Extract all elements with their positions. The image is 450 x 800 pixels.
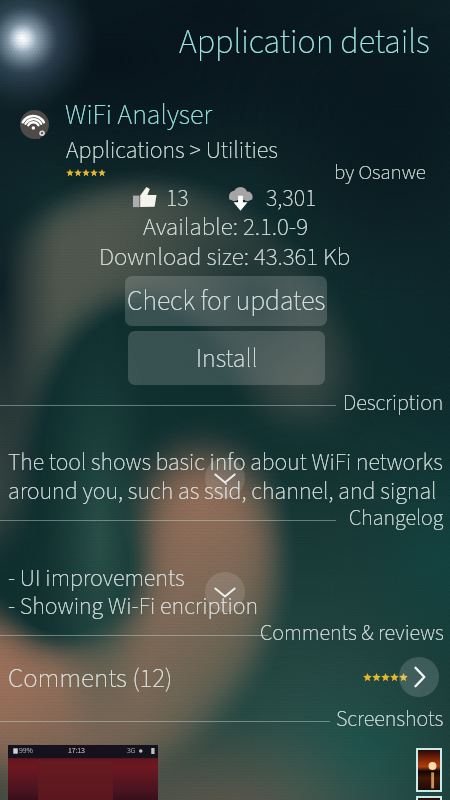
staticText: Application details <box>179 18 430 66</box>
staticText: The tool shows basic info about WiFi net… <box>8 446 443 480</box>
staticText: 13 <box>166 181 189 215</box>
staticText: Changelog <box>349 502 444 533</box>
staticText: 3,301 <box>266 181 317 215</box>
staticText: Check for updates <box>127 282 326 321</box>
staticText: around you, such as ssid, channel, and s… <box>8 474 437 508</box>
button[interactable]: Check for updates <box>125 276 327 326</box>
button[interactable]: Open comments <box>399 657 439 697</box>
staticText: by Osanwe <box>334 157 426 187</box>
staticText: Description <box>343 387 444 418</box>
staticText: 17:13 <box>68 745 85 756</box>
staticText: Comments (12) <box>8 659 173 697</box>
button[interactable]: Screenshot <box>8 745 158 800</box>
button[interactable]: Screenshot thumbnail <box>418 750 440 790</box>
staticText: WiFi Analyser <box>65 95 212 135</box>
staticText: Applications > Utilities <box>66 133 278 167</box>
button[interactable]: Screenshot thumbnail <box>418 798 440 800</box>
staticText: Download size: 43.361 Kb <box>99 239 351 275</box>
staticText: Comments & reviews <box>260 617 444 648</box>
staticText: Install <box>196 340 258 377</box>
button[interactable]: Expand <box>205 572 245 612</box>
staticText: 99% <box>19 745 33 756</box>
staticText: Available: 2.1.0-9 <box>143 209 308 245</box>
button[interactable]: Install <box>128 331 325 385</box>
staticText: 3G <box>127 745 136 756</box>
staticText: - UI improvements <box>8 561 185 595</box>
staticText: - Showing Wi-Fi encription <box>8 589 259 623</box>
button[interactable]: Expand <box>205 458 245 498</box>
staticText: Screenshots <box>336 703 444 734</box>
